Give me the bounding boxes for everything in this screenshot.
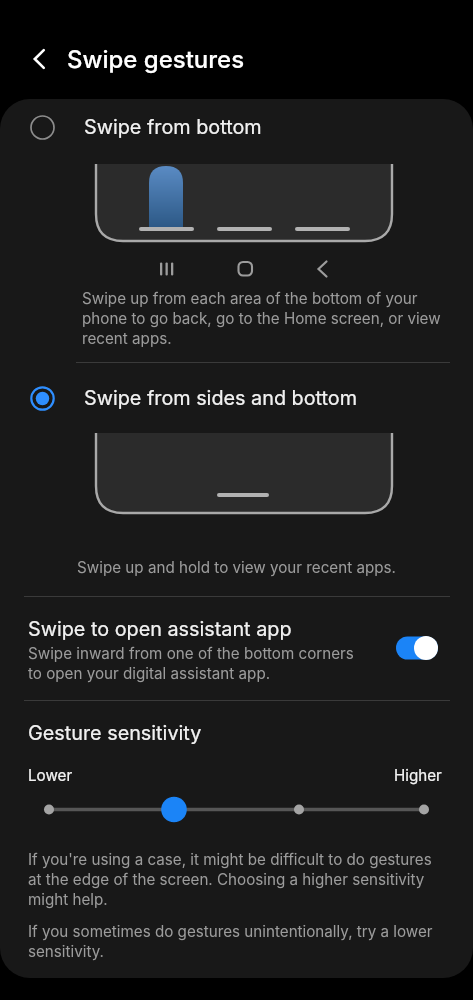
staticText: If you sometimes do gestures unintention… [28, 922, 440, 960]
button[interactable]: Gesture sensitivity slider [0, 795, 473, 821]
button[interactable]: Swipe to open assistant app [396, 634, 442, 662]
staticText: Swipe from sides and bottom [84, 386, 358, 410]
staticText: Gesture sensitivity [28, 721, 202, 745]
staticText: Swipe from bottom [84, 115, 262, 139]
staticText: Lower [28, 766, 73, 784]
staticText: Higher [394, 766, 442, 784]
staticText: Swipe to open assistant app [28, 617, 292, 641]
staticText: Swipe inward from one of the bottom corn… [28, 644, 363, 682]
button[interactable] [0, 105, 473, 150]
button[interactable] [0, 597, 473, 692]
staticText: Swipe up from each area of the bottom of… [82, 289, 444, 347]
staticText: Swipe up and hold to view your recent ap… [0, 558, 473, 576]
button[interactable]: Navigate up [18, 37, 62, 81]
staticText: If you're using a case, it might be diff… [28, 850, 440, 908]
staticText: Swipe gestures [67, 45, 245, 74]
